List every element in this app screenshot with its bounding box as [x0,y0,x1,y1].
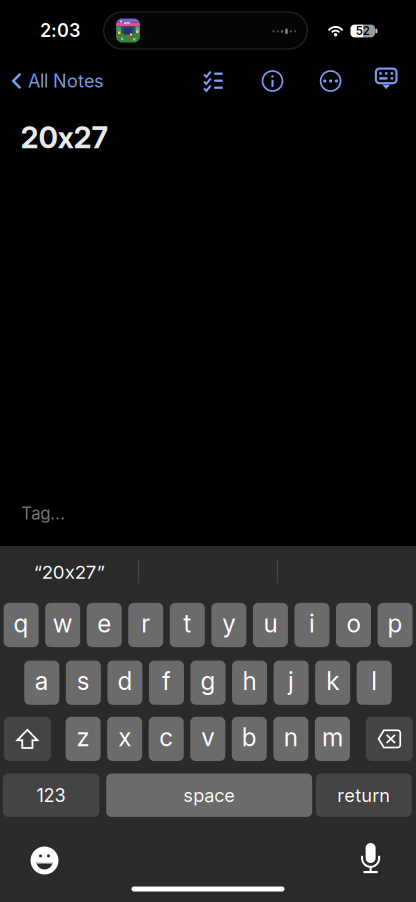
staticText: t [183,609,191,638]
button[interactable]: Note Information [252,61,292,101]
staticText: g [200,666,215,696]
staticText: k [326,666,339,696]
staticText: j [288,666,294,696]
staticText: l [371,666,377,696]
staticText: return [337,784,390,806]
staticText: v [201,723,214,752]
button[interactable]: o [336,603,371,647]
button[interactable]: l [357,661,392,705]
staticText: q [14,609,29,638]
staticText: space [183,784,235,806]
staticText: n [284,723,298,752]
button[interactable]: i [294,603,329,647]
staticText: i [309,609,315,638]
button[interactable]: All Notes [8,61,108,101]
button[interactable]: a [24,661,59,705]
button[interactable]: j [274,661,309,705]
button[interactable]: d [107,661,142,705]
staticText: r [141,609,150,638]
staticText: d [117,666,132,696]
button[interactable]: k [315,661,350,705]
staticText: b [242,723,257,752]
staticText: 20x27 [20,120,108,155]
button[interactable]: v [190,717,225,761]
staticText: c [159,723,173,752]
button[interactable]: f [149,661,184,705]
staticText: p [388,609,403,638]
staticText: Tag... [21,503,65,524]
button[interactable]: h [232,661,267,705]
button[interactable]: y [211,603,246,647]
button[interactable]: Checklist [194,62,232,99]
staticText: y [222,609,235,638]
button[interactable]: g [190,661,225,705]
staticText: h [243,666,257,696]
button[interactable]: u [253,603,288,647]
staticText: “20x27” [34,561,105,583]
button[interactable]: m [315,717,350,761]
staticText: 52 [356,24,370,38]
button[interactable]: t [170,603,205,647]
button[interactable]: b [232,717,267,761]
button[interactable]: z [66,717,101,761]
button[interactable]: Emoji [22,838,66,882]
staticText: f [162,666,171,696]
staticText: m [322,723,343,752]
button[interactable]: Dictation [352,835,390,883]
staticText: 123 [37,784,66,806]
button[interactable]: Delete [366,717,413,761]
staticText: x [118,723,131,752]
button[interactable]: Hide Keyboard [366,59,406,100]
staticText: All Notes [28,70,104,92]
button[interactable]: q [4,603,39,647]
button[interactable]: c [149,717,184,761]
button[interactable]: 123 [3,773,99,817]
button[interactable]: n [273,717,308,761]
staticText: a [35,666,49,696]
staticText: 2:03 [40,20,80,41]
button[interactable]: return [316,773,412,817]
staticText: z [77,723,90,752]
staticText: w [53,609,73,638]
staticText: e [97,609,111,638]
button[interactable]: Shift [4,717,51,761]
staticText: u [263,609,277,638]
button[interactable]: x [107,717,142,761]
button[interactable]: r [128,603,163,647]
button[interactable]: space [106,773,312,817]
button[interactable]: p [378,603,413,647]
button[interactable]: s [66,661,101,705]
button[interactable]: More [311,61,351,101]
button[interactable]: “20x27” [0,548,138,596]
staticText: s [77,666,90,696]
button[interactable]: w [45,603,80,647]
button[interactable]: e [87,603,122,647]
staticText: o [346,609,360,638]
